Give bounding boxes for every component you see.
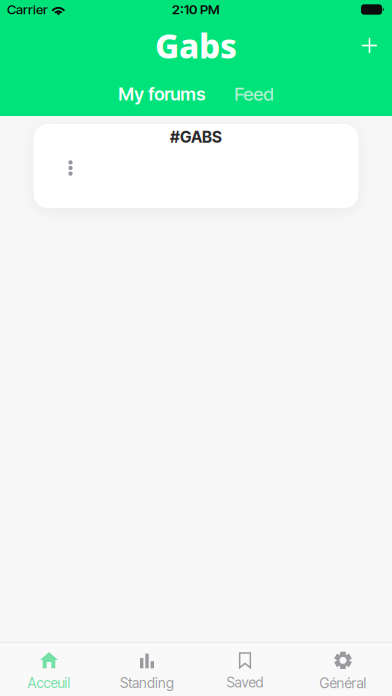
- staticText: My forums: [118, 83, 205, 105]
- button[interactable]: New forum: [349, 25, 389, 65]
- button[interactable]: Forum options: [56, 153, 84, 183]
- staticText: Général: [319, 675, 366, 692]
- staticText: Standing: [120, 674, 174, 691]
- staticText: Feed: [234, 83, 274, 105]
- staticText: #GABS: [170, 127, 222, 146]
- button[interactable]: Général: [294, 643, 392, 696]
- staticText: Acceuil: [27, 674, 70, 691]
- button[interactable]: Saved: [196, 643, 294, 696]
- button[interactable]: Standing: [98, 643, 196, 696]
- button[interactable]: My forums: [111, 74, 212, 114]
- staticText: Carrier: [7, 1, 48, 17]
- button[interactable]: Acceuil: [0, 643, 98, 696]
- staticText: Gabs: [155, 23, 237, 68]
- staticText: Saved: [226, 674, 263, 691]
- button[interactable]: Feed: [228, 74, 281, 114]
- staticText: 2:10 PM: [172, 1, 220, 17]
